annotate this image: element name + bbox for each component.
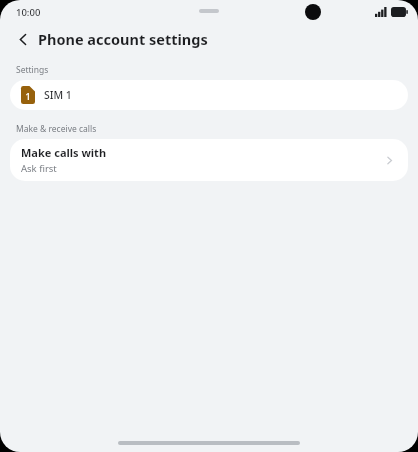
staticText: SIM 1 [44,88,72,102]
staticText: Phone account settings [38,29,208,49]
staticText: Ask first [21,162,57,175]
staticText: 10:00 [16,6,41,19]
button[interactable]: 1 [10,80,408,110]
button[interactable]: Make calls with [10,139,408,181]
button[interactable]: Back [10,26,36,52]
staticText: 1 [25,90,31,102]
staticText: Make & receive calls [16,123,97,135]
staticText: Settings [16,64,49,76]
staticText: Make calls with [21,145,107,160]
